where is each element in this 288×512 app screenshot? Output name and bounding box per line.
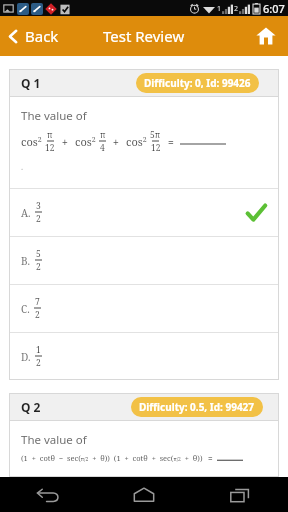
button[interactable]: Difficulty: 0.5, Id: 99427 [131, 397, 263, 417]
staticText: 2 [35, 309, 40, 321]
staticText: B. [21, 254, 31, 268]
staticText: cos2 [126, 134, 147, 149]
staticText: 1 [217, 4, 222, 14]
button[interactable]: Back [0, 477, 96, 512]
staticText: 5 [36, 248, 41, 260]
staticText: 2 [36, 213, 41, 225]
button[interactable]: Difficulty: 0, Id: 99426 [136, 73, 259, 93]
staticText: Test Review [103, 26, 185, 46]
button[interactable]: Home [244, 16, 288, 56]
button[interactable]: Home [96, 477, 192, 512]
staticText: Difficulty: 0, Id: 99426 [144, 76, 251, 90]
staticText: cos2 [75, 134, 96, 149]
staticText: π [47, 129, 53, 141]
staticText: 6:07 [263, 1, 285, 16]
staticText: A. [21, 206, 31, 220]
staticText: 2 [234, 4, 239, 14]
staticText: 2 [36, 261, 41, 273]
staticText: . [21, 161, 24, 172]
staticText: 3 [36, 200, 41, 212]
staticText: (1 + cotθ − sec(π/2 + θ)) (1 + cotθ + se… [21, 453, 203, 463]
staticText: 5π [150, 129, 161, 141]
staticText: 2 [36, 357, 41, 369]
staticText: 12 [151, 142, 161, 154]
button[interactable]: Back [0, 16, 69, 56]
staticText: Difficulty: 0.5, Id: 99427 [139, 400, 255, 414]
staticText: D. [21, 350, 31, 364]
staticText: π [100, 129, 106, 141]
staticText: The value of [21, 108, 87, 124]
staticText: Q 2 [21, 399, 41, 415]
staticText: = [208, 453, 213, 463]
button[interactable]: A. [9, 189, 279, 236]
button[interactable]: Recent apps [192, 477, 288, 512]
staticText: cos2 [21, 134, 42, 149]
button[interactable]: C. [9, 285, 279, 332]
staticText: 7 [35, 296, 40, 308]
staticText: + [62, 135, 68, 149]
staticText: = [168, 135, 174, 149]
button[interactable]: B. [9, 237, 279, 284]
staticText: 12 [45, 142, 55, 154]
other: Correct answer [245, 202, 267, 224]
button[interactable]: D. [9, 333, 279, 380]
staticText: C. [21, 302, 30, 316]
staticText: + [113, 135, 119, 149]
staticText: Back [25, 26, 59, 46]
staticText: Q 1 [21, 75, 41, 91]
staticText: The value of [21, 432, 87, 448]
staticText: 4 [100, 142, 105, 154]
staticText: 1 [36, 344, 41, 356]
